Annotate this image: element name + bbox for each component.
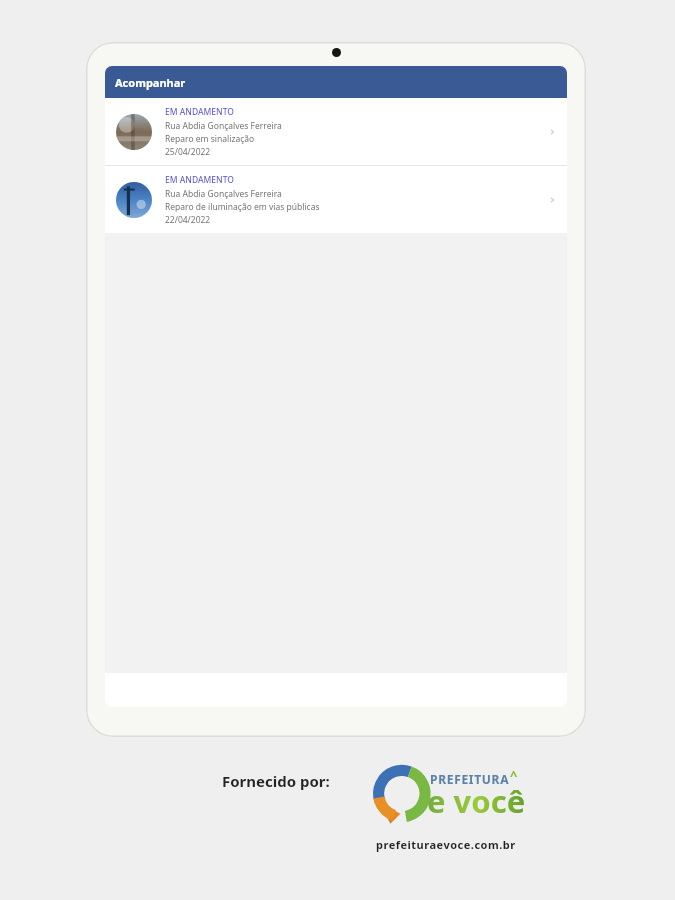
staticText: ^ bbox=[510, 766, 518, 784]
staticText: Rua Abdia Gonçalves Ferreira bbox=[165, 188, 282, 200]
staticText: EM ANDAMENTO bbox=[165, 106, 234, 118]
staticText: Rua Abdia Gonçalves Ferreira bbox=[165, 120, 282, 132]
other: Logo Prefeitura e Você bbox=[368, 761, 440, 835]
staticText: prefeituraevoce.com.br bbox=[376, 837, 516, 852]
staticText: 25/04/2022 bbox=[165, 146, 211, 158]
staticText: EM ANDAMENTO bbox=[165, 174, 234, 186]
button[interactable]: Fornecido por: bbox=[222, 760, 562, 865]
button[interactable]: EM ANDAMENTO bbox=[105, 166, 567, 233]
staticText: Reparo de iluminação em vias públicas bbox=[165, 201, 320, 213]
button[interactable]: EM ANDAMENTO bbox=[105, 98, 567, 165]
button[interactable]: Abrir detalhes bbox=[545, 193, 559, 207]
button[interactable]: Acompanhar bbox=[105, 66, 567, 98]
staticText: e você bbox=[427, 780, 526, 822]
button[interactable]: Abrir detalhes bbox=[545, 125, 559, 139]
staticText: Acompanhar bbox=[115, 75, 186, 90]
staticText: PREFEITURA bbox=[430, 771, 510, 787]
staticText: Reparo em sinalização bbox=[165, 133, 255, 145]
staticText: Fornecido por: bbox=[222, 771, 330, 791]
staticText: 22/04/2022 bbox=[165, 214, 211, 226]
